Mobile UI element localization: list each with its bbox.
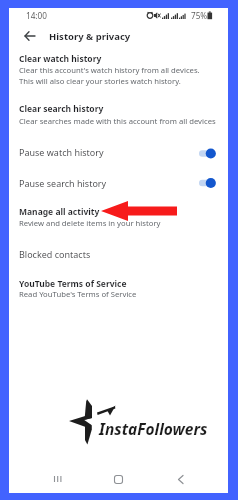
staticText: Blocked contacts (19, 248, 91, 260)
button[interactable]: Recent apps (9, 468, 82, 490)
staticText: YouTube Terms of Service (19, 278, 127, 290)
staticText: Pause watch history (19, 146, 104, 158)
staticText: This will also clear your stories watch … (19, 76, 181, 86)
staticText: Clear search history (19, 103, 104, 115)
button[interactable] (9, 175, 228, 199)
staticText: History & privacy (49, 30, 131, 43)
button[interactable] (9, 100, 228, 132)
button[interactable]: Back (155, 468, 228, 490)
staticText: Read YouTube's Terms of Service (19, 289, 137, 299)
staticText: InstaFollowers (99, 418, 208, 439)
button[interactable]: Home (82, 468, 155, 490)
staticText: Clear this account's watch history from … (19, 65, 200, 75)
button[interactable] (9, 144, 228, 168)
staticText: Pause search history (19, 177, 107, 189)
staticText: Clear searches made with this account fr… (19, 116, 216, 126)
button[interactable] (9, 246, 228, 268)
staticText: Clear watch history (19, 53, 102, 65)
button[interactable] (9, 275, 228, 307)
staticText: Manage all activity (19, 206, 100, 218)
staticText: 14:00 (26, 10, 47, 21)
button[interactable] (9, 50, 228, 94)
staticText: Review and delete items in your history (19, 218, 161, 228)
button[interactable]: Back (19, 28, 49, 58)
staticText: 75% (191, 10, 208, 21)
button[interactable] (9, 203, 228, 235)
